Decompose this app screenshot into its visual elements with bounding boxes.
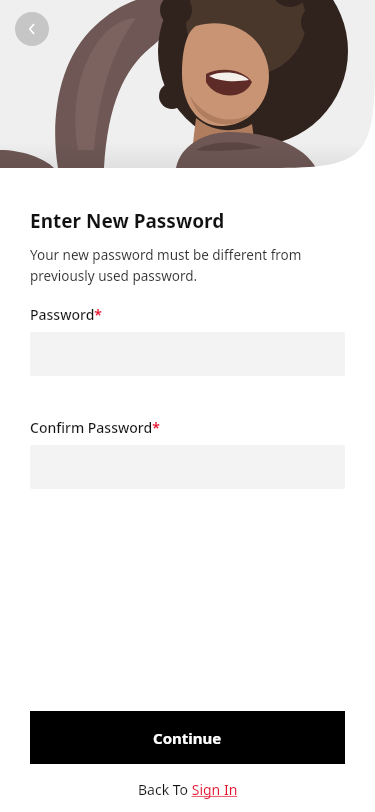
staticText: Continue bbox=[153, 728, 222, 748]
button[interactable]: Continue bbox=[30, 711, 345, 764]
staticText: Your new password must be different from… bbox=[30, 246, 302, 285]
staticText: Back To Sign In bbox=[138, 780, 238, 799]
button[interactable]: Back bbox=[15, 12, 49, 46]
staticText: Enter New Password bbox=[30, 208, 225, 234]
button[interactable]: Back To Sign In bbox=[130, 778, 246, 801]
staticText: Confirm Password* bbox=[30, 418, 160, 437]
staticText: Password* bbox=[30, 305, 102, 324]
